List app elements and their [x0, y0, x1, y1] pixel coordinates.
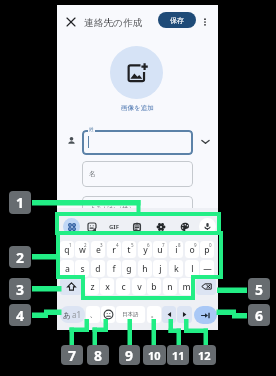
staticText: 5: [131, 242, 134, 248]
staticText: 11: [172, 348, 185, 363]
staticText: 名: [89, 170, 96, 178]
staticText: e: [96, 244, 101, 256]
staticText: w: [79, 244, 86, 256]
staticText: 5: [255, 280, 264, 299]
button[interactable]: Cursor right: [177, 306, 192, 323]
staticText: 12: [198, 348, 211, 363]
staticText: o: [189, 244, 195, 256]
button[interactable]: r: [107, 241, 121, 258]
button[interactable]: p: [200, 241, 214, 258]
button[interactable]: j: [153, 260, 167, 277]
button[interactable]: h: [138, 260, 152, 277]
staticText: GIF: [109, 223, 119, 231]
button[interactable]: f: [107, 260, 121, 277]
staticText: 1: [69, 242, 72, 248]
staticText: y: [143, 244, 148, 256]
staticText: a1: [72, 309, 82, 320]
button[interactable]: Cursor left: [162, 306, 176, 323]
staticText: 4: [116, 242, 119, 248]
staticText: l: [191, 263, 194, 275]
staticText: 8: [178, 242, 181, 248]
staticText: 画像を追加: [121, 104, 154, 112]
button[interactable]: よみがな（姓）: [82, 196, 193, 222]
staticText: i: [175, 244, 178, 256]
staticText: 10: [148, 348, 161, 363]
button[interactable]: o: [185, 241, 199, 258]
staticText: 0: [209, 242, 212, 248]
button[interactable]: 、: [86, 306, 100, 323]
staticText: 、: [89, 309, 98, 320]
button[interactable]: Switch input: [60, 306, 85, 323]
button[interactable]: b: [147, 278, 161, 295]
button[interactable]: 日本語: [116, 306, 145, 323]
button[interactable]: e: [91, 241, 105, 258]
button[interactable]: Themes: [176, 218, 193, 235]
staticText: 4: [16, 306, 25, 325]
staticText: 9: [194, 242, 197, 248]
button[interactable]: w: [75, 241, 89, 258]
button[interactable]: c: [116, 278, 130, 295]
button[interactable]: d: [91, 260, 105, 277]
button[interactable]: q: [60, 241, 74, 258]
button[interactable]: i: [169, 241, 183, 258]
button[interactable]: Close: [64, 15, 78, 29]
button[interactable]: 名: [82, 161, 193, 187]
button[interactable]: x: [100, 278, 114, 295]
staticText: あ: [63, 310, 72, 320]
button[interactable]: t: [122, 241, 136, 258]
staticText: 7: [162, 242, 165, 248]
button[interactable]: Backspace: [196, 278, 216, 295]
button[interactable]: Keyboard tools: [63, 218, 80, 235]
button[interactable]: GIF: [105, 218, 122, 235]
staticText: 7: [68, 346, 77, 365]
button[interactable]: Stickers: [83, 218, 100, 235]
button[interactable]: g: [122, 260, 136, 277]
button[interactable]: s: [75, 260, 89, 277]
staticText: 。: [150, 309, 159, 320]
staticText: h: [142, 263, 148, 275]
staticText: u: [157, 244, 163, 256]
button[interactable]: Clipboard: [128, 218, 145, 235]
staticText: b: [151, 281, 157, 293]
staticText: 姓: [89, 127, 94, 133]
staticText: 2: [16, 248, 25, 267]
staticText: d: [95, 263, 101, 275]
button[interactable]: —: [200, 260, 214, 277]
staticText: n: [167, 281, 173, 293]
button[interactable]: m: [179, 278, 193, 295]
button[interactable]: n: [163, 278, 177, 295]
staticText: k: [174, 263, 179, 275]
staticText: r: [112, 244, 116, 256]
button[interactable]: v: [132, 278, 146, 295]
button[interactable]: z: [85, 278, 99, 295]
button[interactable]: 。: [147, 306, 161, 323]
button[interactable]: 保存: [158, 12, 196, 28]
staticText: 連絡先の作成: [84, 17, 143, 29]
button[interactable]: [82, 130, 193, 155]
staticText: z: [90, 281, 95, 293]
staticText: —: [203, 263, 212, 275]
button[interactable]: k: [169, 260, 183, 277]
button[interactable]: l: [185, 260, 199, 277]
staticText: よみがな（姓）: [89, 205, 136, 213]
button[interactable]: Voice input: [199, 218, 216, 235]
button[interactable]: u: [153, 241, 167, 258]
staticText: 3: [16, 280, 25, 299]
staticText: f: [112, 263, 116, 275]
staticText: t: [127, 244, 131, 256]
staticText: m: [182, 281, 191, 293]
button[interactable]: Settings: [152, 218, 169, 235]
staticText: 日本語: [122, 311, 139, 318]
button[interactable]: y: [138, 241, 152, 258]
button[interactable]: Add photo: [110, 46, 163, 99]
staticText: 3: [100, 242, 103, 248]
button[interactable]: More options: [198, 15, 212, 29]
staticText: v: [137, 281, 142, 293]
button[interactable]: Next field: [194, 306, 217, 324]
button[interactable]: 画像を追加: [57, 102, 218, 114]
button[interactable]: Expand: [197, 133, 213, 149]
button[interactable]: Emoji: [101, 306, 115, 323]
staticText: g: [126, 263, 132, 275]
button[interactable]: Shift: [60, 278, 82, 295]
button[interactable]: a: [60, 260, 74, 277]
